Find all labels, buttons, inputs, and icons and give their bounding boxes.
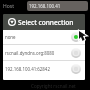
staticText: Host: [3, 3, 14, 10]
button[interactable]: 192.168.100.41:62842: [3, 61, 85, 77]
button[interactable]: rscnail.dyndns.org:8080: [3, 45, 85, 60]
other: Info: [8, 18, 16, 26]
staticText: 192.168.100.41: [29, 3, 61, 9]
staticText: Copyright rscnail.net: [31, 83, 76, 89]
button[interactable]: none: [3, 30, 85, 44]
staticText: rscnail.dyndns.org:8080: [5, 50, 71, 56]
staticText: Select connection: [18, 18, 74, 27]
staticText: none: [5, 34, 71, 40]
other: Pointer: [79, 31, 86, 41]
staticText: 192.168.100.41:62842: [5, 66, 71, 72]
button[interactable]: 192.168.100.41: [27, 1, 88, 11]
